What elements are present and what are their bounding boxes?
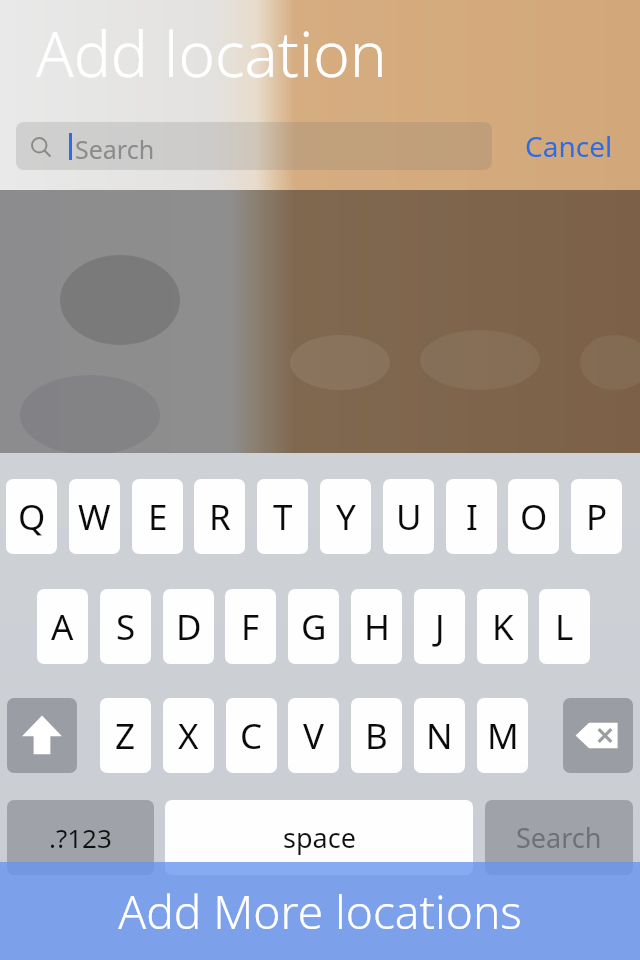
button[interactable]: A	[37, 589, 88, 664]
staticText: C	[240, 712, 263, 760]
button[interactable]: V	[288, 698, 339, 773]
button[interactable]: Shift	[7, 698, 77, 773]
button[interactable]: S	[100, 589, 151, 664]
button[interactable]: F	[225, 589, 276, 664]
button[interactable]: Search	[16, 122, 492, 170]
staticText: W	[78, 493, 111, 541]
button[interactable]: Z	[100, 698, 151, 773]
staticText: J	[435, 603, 445, 651]
staticText: O	[520, 493, 548, 541]
button[interactable]: C	[226, 698, 277, 773]
button[interactable]: K	[477, 589, 528, 664]
staticText: U	[396, 493, 422, 541]
staticText: Z	[115, 712, 136, 760]
button[interactable]: space	[165, 800, 473, 875]
staticText: R	[209, 493, 231, 541]
button[interactable]: Q	[6, 479, 57, 554]
button[interactable]: L	[539, 589, 590, 664]
staticText: X	[178, 712, 199, 760]
button[interactable]: Cancel	[505, 122, 633, 170]
button[interactable]: G	[288, 589, 339, 664]
staticText: L	[555, 603, 574, 651]
staticText: Y	[336, 493, 356, 541]
staticText: E	[148, 493, 168, 541]
staticText: Search	[75, 132, 155, 166]
staticText: D	[176, 603, 202, 651]
button[interactable]: X	[163, 698, 214, 773]
staticText: Add More locations	[118, 880, 522, 943]
staticText: F	[241, 603, 260, 651]
staticText: B	[365, 712, 388, 760]
button[interactable]: O	[508, 479, 559, 554]
button[interactable]: P	[571, 479, 622, 554]
staticText: Add location	[36, 11, 387, 95]
button[interactable]: M	[477, 698, 528, 773]
button[interactable]: B	[351, 698, 402, 773]
button[interactable]: N	[414, 698, 465, 773]
staticText: I	[466, 493, 478, 541]
button[interactable]: Delete	[563, 698, 633, 773]
staticText: T	[273, 493, 293, 541]
button[interactable]: I	[446, 479, 497, 554]
staticText: .?123	[49, 820, 112, 855]
button[interactable]: E	[132, 479, 183, 554]
button[interactable]: D	[163, 589, 214, 664]
staticText: N	[426, 712, 453, 760]
staticText: Search	[516, 819, 602, 856]
button[interactable]: J	[414, 589, 465, 664]
button[interactable]: Add More locations	[0, 862, 640, 960]
staticText: V	[303, 712, 325, 760]
button[interactable]: U	[383, 479, 434, 554]
button[interactable]: R	[194, 479, 245, 554]
button[interactable]: W	[69, 479, 120, 554]
button[interactable]: H	[351, 589, 402, 664]
staticText: H	[364, 603, 390, 651]
staticText: space	[283, 819, 356, 856]
staticText: P	[586, 493, 608, 541]
staticText: K	[492, 603, 514, 651]
button[interactable]: .?123	[7, 800, 154, 875]
button[interactable]: Y	[320, 479, 371, 554]
staticText: Cancel	[525, 127, 613, 165]
staticText: S	[116, 603, 136, 651]
button[interactable]: Search	[485, 800, 633, 875]
staticText: G	[301, 603, 327, 651]
other: Search	[30, 136, 52, 158]
staticText: Q	[18, 493, 46, 541]
staticText: M	[487, 712, 519, 760]
button[interactable]: T	[257, 479, 308, 554]
staticText: A	[51, 603, 74, 651]
